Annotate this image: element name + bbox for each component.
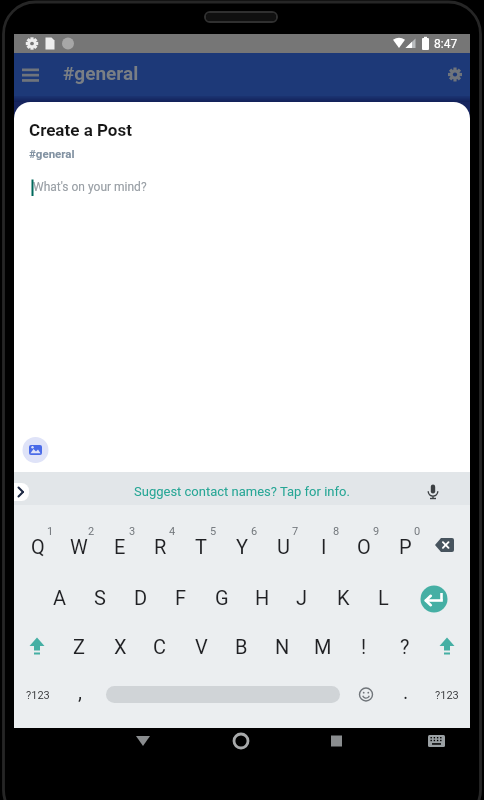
staticText: 8 [333, 525, 340, 538]
staticText: M [314, 635, 332, 658]
staticText: L [378, 586, 389, 609]
staticText: 9 [373, 525, 380, 538]
staticText: . [403, 680, 409, 703]
staticText: 4 [169, 525, 176, 538]
staticText: Create a Post [29, 120, 132, 140]
staticText: ! [361, 635, 367, 658]
staticText: E [114, 535, 126, 558]
staticText: D [134, 586, 148, 609]
staticText: V [195, 635, 208, 658]
staticText: Suggest contact names? Tap for info. [134, 484, 350, 499]
staticText: W [70, 535, 88, 558]
staticText: N [275, 635, 290, 658]
staticText: #general [29, 147, 75, 160]
staticText: ? [400, 635, 410, 658]
staticText: S [94, 586, 106, 609]
staticText: What's on your mind? [33, 180, 147, 194]
staticText: U [277, 535, 290, 558]
staticText: 8:47 [434, 37, 458, 51]
staticText: Z [73, 635, 85, 658]
staticText: 7 [292, 525, 299, 538]
staticText: ?123 [435, 689, 459, 702]
staticText: T [195, 535, 207, 558]
staticText: X [114, 635, 127, 658]
staticText: C [153, 635, 167, 658]
staticText: K [337, 586, 350, 609]
staticText: ?123 [26, 689, 50, 702]
staticText: R [154, 535, 167, 558]
staticText: 5 [210, 525, 217, 538]
staticText: F [175, 586, 187, 609]
staticText: 1 [47, 525, 54, 538]
staticText: 0 [414, 525, 421, 538]
staticText: P [399, 535, 412, 558]
staticText: I [321, 535, 327, 558]
staticText: G [215, 586, 229, 609]
staticText: #general [63, 62, 139, 84]
staticText: 2 [88, 525, 95, 538]
staticText: Q [31, 535, 45, 558]
staticText: 3 [129, 525, 136, 538]
staticText: , [78, 680, 82, 703]
staticText: Y [236, 535, 249, 558]
staticText: O [357, 535, 371, 558]
staticText: B [235, 635, 248, 658]
staticText: A [53, 586, 67, 609]
staticText: J [296, 586, 308, 609]
staticText: 6 [251, 525, 258, 538]
staticText: H [255, 586, 270, 609]
